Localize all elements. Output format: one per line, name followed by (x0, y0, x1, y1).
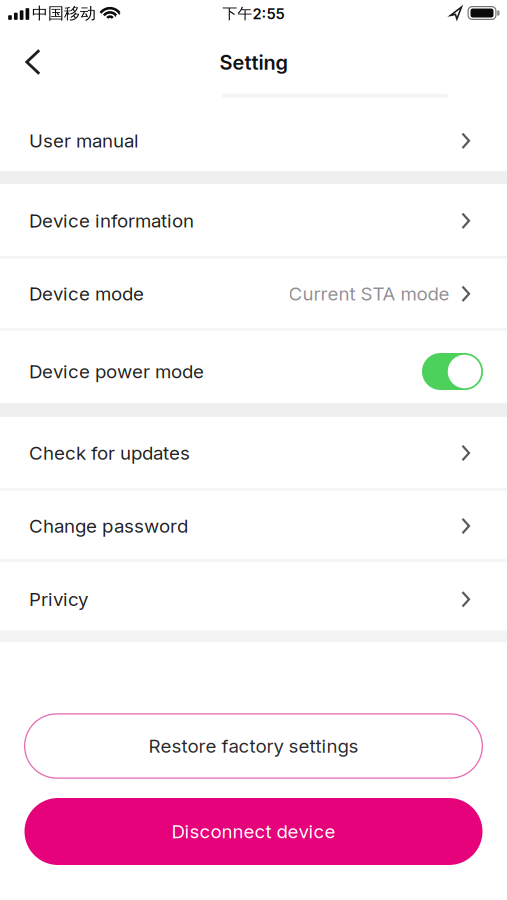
staticText: Setting (219, 51, 287, 74)
staticText: 中国移动 (32, 4, 96, 23)
staticText: Disconnect device (171, 820, 335, 842)
button[interactable]: Device mode (0, 257, 507, 330)
staticText: Device information (29, 210, 194, 232)
staticText: Restore factory settings (148, 735, 358, 757)
button[interactable]: Disconnect device (24, 798, 482, 865)
staticText: Privicy (29, 588, 88, 610)
staticText: Device power mode (29, 360, 204, 382)
staticText: Device mode (29, 283, 144, 305)
button[interactable]: User manual (0, 104, 507, 177)
button[interactable]: Check for updates (0, 416, 507, 489)
button[interactable]: Back (13, 36, 53, 88)
staticText: Check for updates (29, 442, 190, 464)
staticText: User manual (29, 130, 139, 152)
button[interactable]: Privicy (0, 563, 507, 636)
staticText: Change password (29, 515, 188, 537)
staticText: 下午2:55 (222, 4, 284, 22)
button[interactable]: Device power mode (0, 335, 507, 408)
button[interactable]: Restore factory settings (24, 713, 483, 779)
staticText: Current STA mode (288, 283, 449, 305)
button[interactable]: Change password (0, 489, 507, 562)
button[interactable]: Device information (0, 184, 507, 257)
